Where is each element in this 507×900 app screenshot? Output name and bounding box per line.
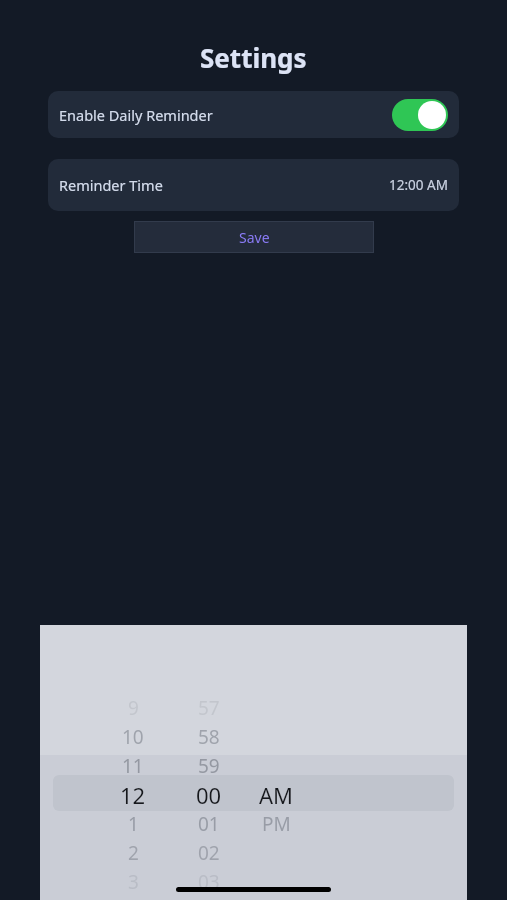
staticText: 12	[120, 780, 146, 809]
staticText: Settings	[200, 40, 307, 75]
staticText: 57	[198, 695, 220, 721]
staticText: 03	[198, 869, 220, 895]
staticText: 1	[128, 811, 139, 837]
button[interactable]: Enable daily reminder toggle	[392, 99, 448, 131]
button[interactable]: Enable Daily Reminder	[48, 91, 459, 138]
staticText: 00	[196, 780, 222, 809]
staticText: 01	[198, 811, 220, 837]
staticText: 3	[128, 869, 139, 895]
button[interactable]: Save	[135, 222, 373, 252]
staticText: 10	[122, 724, 144, 750]
staticText: Save	[239, 228, 270, 247]
staticText: 12:00 AM	[389, 176, 448, 194]
staticText: 58	[198, 724, 220, 750]
staticText: Enable Daily Reminder	[59, 105, 213, 125]
staticText: 9	[128, 695, 139, 721]
staticText: 11	[122, 753, 144, 779]
staticText: AM	[259, 780, 294, 809]
staticText: 2	[128, 840, 139, 866]
staticText: Reminder Time	[59, 175, 163, 195]
staticText: 02	[198, 840, 220, 866]
staticText: 59	[198, 753, 220, 779]
staticText: PM	[262, 811, 291, 837]
button[interactable]: Reminder Time	[48, 159, 459, 211]
